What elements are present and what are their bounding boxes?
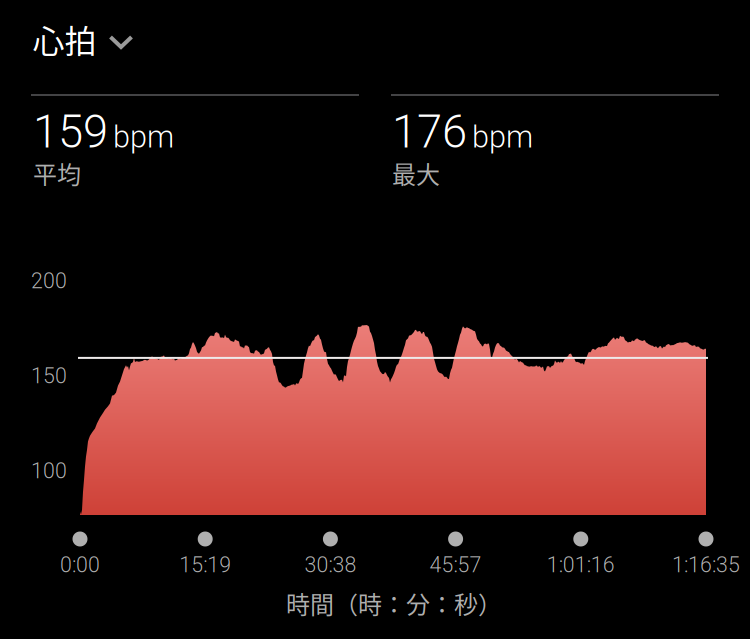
staticText: 心拍: [32, 16, 96, 62]
staticText: 平均: [33, 156, 81, 190]
staticText: 45:57: [430, 552, 482, 577]
staticText: 0:00: [60, 552, 100, 577]
staticText: bpm: [472, 119, 533, 155]
staticText: 159: [33, 105, 108, 158]
staticText: 最大: [392, 156, 440, 190]
staticText: 1:16:35: [672, 552, 740, 577]
staticText: 時間（時：分：秒）: [286, 586, 502, 620]
staticText: 1:01:16: [547, 552, 615, 577]
button[interactable]: 心拍: [24, 7, 141, 71]
staticText: 100: [31, 458, 67, 483]
staticText: 30:38: [304, 552, 356, 577]
staticText: 176: [392, 105, 467, 158]
staticText: 200: [31, 268, 67, 293]
staticText: 150: [31, 363, 67, 388]
staticText: bpm: [113, 119, 174, 155]
staticText: 15:19: [179, 552, 231, 577]
